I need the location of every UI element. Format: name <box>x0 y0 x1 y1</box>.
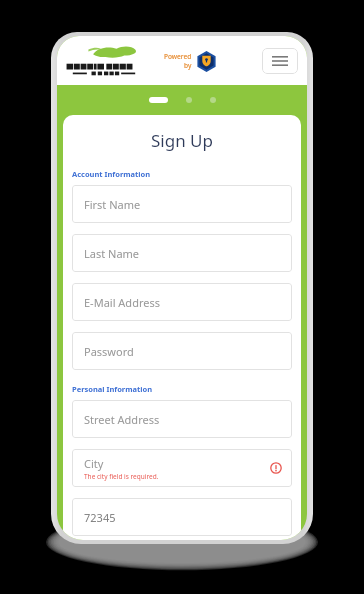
staticText: Powered <box>164 52 192 61</box>
staticText: by <box>184 61 192 70</box>
button[interactable]: Street Address <box>72 400 292 438</box>
staticText: Last Name <box>84 246 140 261</box>
button[interactable]: Page 2 <box>186 97 192 103</box>
staticText: Password <box>84 344 134 359</box>
button[interactable]: City <box>72 449 292 487</box>
button[interactable]: Open menu <box>262 48 298 74</box>
staticText: Street Address <box>84 412 160 427</box>
staticText: E-Mail Address <box>84 295 160 310</box>
button[interactable]: First Name <box>72 185 292 223</box>
button[interactable]: Page 3 <box>210 97 216 103</box>
staticText: First Name <box>84 197 141 212</box>
staticText: Account Information <box>72 169 151 179</box>
other: Field error <box>270 462 282 474</box>
staticText: Sign Up <box>63 129 301 152</box>
staticText: The city field is required. <box>84 472 159 481</box>
staticText: City <box>84 456 104 471</box>
staticText: 72345 <box>84 510 116 525</box>
button[interactable]: Page 1 <box>149 97 168 103</box>
staticText: Personal Information <box>72 384 153 394</box>
button[interactable]: Raging Bull Slots home <box>65 44 143 78</box>
button[interactable]: Password <box>72 332 292 370</box>
button[interactable]: E-Mail Address <box>72 283 292 321</box>
button[interactable]: Last Name <box>72 234 292 272</box>
button[interactable]: 72345 <box>72 498 292 536</box>
